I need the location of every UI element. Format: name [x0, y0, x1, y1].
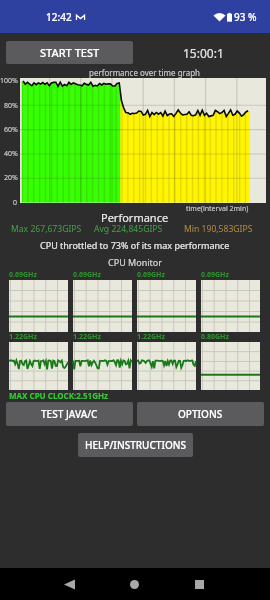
staticText: Avg 224,845GIPS: [94, 223, 163, 235]
button[interactable]: Back: [58, 568, 81, 600]
staticText: 0: [13, 198, 18, 208]
staticText: 80%: [4, 101, 18, 111]
button[interactable]: Home: [123, 568, 146, 600]
staticText: START TEST: [40, 45, 100, 60]
staticText: 0.69GHz: [201, 270, 229, 280]
staticText: CPU Monitor: [108, 256, 162, 268]
button[interactable]: TEST JAVA/C: [6, 402, 133, 426]
staticText: 15:00:1: [183, 45, 224, 61]
staticText: 0.69GHz: [9, 270, 37, 280]
button[interactable]: Recents: [188, 568, 211, 600]
button[interactable]: HELP/INSTRUCTIONS: [78, 433, 193, 457]
staticText: 1.22GHz: [9, 332, 37, 342]
staticText: Min 190,583GIPS: [184, 223, 253, 235]
staticText: time(interval 2min): [186, 204, 249, 214]
staticText: 93 %: [234, 10, 257, 24]
staticText: 1.22GHz: [73, 332, 101, 342]
staticText: OPTIONS: [178, 407, 223, 421]
staticText: 20%: [4, 173, 18, 183]
staticText: 12:42: [46, 10, 72, 24]
staticText: 60%: [4, 125, 18, 135]
staticText: 40%: [4, 149, 18, 159]
staticText: HELP/INSTRUCTIONS: [85, 438, 187, 452]
staticText: CPU throttled to 73% of its max performa…: [40, 239, 230, 251]
staticText: 1.22GHz: [137, 332, 165, 342]
staticText: Performance: [101, 210, 169, 225]
button[interactable]: START TEST: [6, 41, 133, 64]
staticText: 0.69GHz: [73, 270, 101, 280]
staticText: 100%: [0, 76, 18, 86]
staticText: Max 267,673GIPS: [11, 223, 82, 235]
staticText: 0.69GHz: [137, 270, 165, 280]
staticText: TEST JAVA/C: [41, 407, 98, 421]
button[interactable]: OPTIONS: [137, 402, 264, 426]
staticText: 0.80GHz: [201, 332, 229, 342]
staticText: performance over time graph: [89, 67, 201, 78]
staticText: MAX CPU CLOCK:2.51GHz: [9, 390, 109, 401]
